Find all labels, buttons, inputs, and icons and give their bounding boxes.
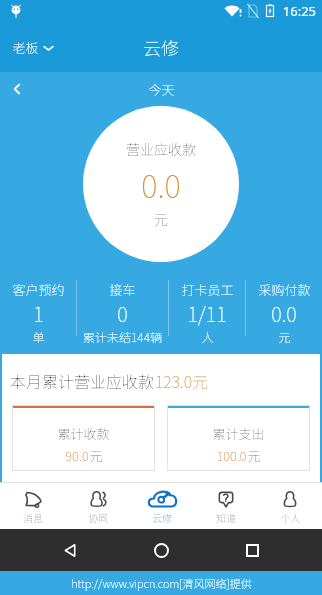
staticText: 元 — [89, 446, 103, 465]
staticText: 消息 — [23, 510, 43, 524]
staticText: 累计未结144辆 — [83, 328, 162, 345]
staticText: 元 — [278, 328, 291, 345]
button[interactable]: 知道 — [194, 483, 258, 529]
button[interactable]: 采购付款 — [246, 276, 322, 348]
staticText: 16:25 — [282, 2, 316, 20]
button[interactable]: Home — [140, 529, 182, 571]
button[interactable]: 打卡员工 — [169, 276, 245, 348]
staticText: 采购付款 — [258, 280, 311, 299]
staticText: 云修 — [143, 34, 179, 60]
staticText: 累计支出 — [212, 424, 265, 443]
staticText: 知道 — [216, 510, 236, 524]
staticText: 1 — [33, 299, 44, 328]
button[interactable]: 营业应收款 — [83, 106, 239, 262]
button[interactable]: 累计支出 — [167, 405, 310, 471]
staticText: 接车 — [109, 280, 136, 299]
staticText: 协同 — [88, 510, 108, 524]
staticText: http://www.vipcn.com[清风网络]提供 — [71, 575, 252, 591]
staticText: 今天 — [148, 80, 175, 99]
staticText: 打卡员工 — [181, 280, 234, 299]
button[interactable]: 云修 — [130, 483, 194, 529]
button[interactable]: 累计收款 — [12, 405, 155, 471]
button[interactable]: Back — [0, 72, 34, 106]
button[interactable]: 协同 — [65, 483, 130, 529]
staticText: 客户预约 — [12, 280, 65, 299]
button[interactable]: Back — [49, 529, 91, 571]
staticText: 1/11 — [187, 299, 227, 328]
staticText: 90.0 — [65, 446, 89, 465]
staticText: 元 — [247, 446, 261, 465]
staticText: 人 — [201, 328, 214, 345]
staticText: 元 — [154, 209, 168, 229]
staticText: 云修 — [152, 510, 172, 524]
button[interactable]: 消息 — [0, 483, 65, 529]
staticText: 老板 — [12, 38, 39, 57]
staticText: 本月累计营业应收款 — [10, 369, 155, 392]
staticText: 营业应收款 — [126, 139, 196, 159]
staticText: 个人 — [280, 510, 300, 524]
staticText: 0 — [117, 299, 128, 328]
button[interactable]: 接车 — [77, 276, 168, 348]
button[interactable]: 个人 — [258, 483, 322, 529]
button[interactable]: Recent apps — [231, 529, 273, 571]
staticText: 0.0 — [141, 162, 181, 207]
staticText: 0.0 — [271, 299, 297, 328]
button[interactable]: 老板 — [0, 32, 64, 63]
staticText: 单 — [32, 328, 45, 345]
button[interactable]: 客户预约 — [0, 276, 76, 348]
staticText: 100.0 — [216, 446, 247, 465]
staticText: 123.0元 — [155, 369, 209, 392]
staticText: 累计收款 — [57, 424, 110, 443]
